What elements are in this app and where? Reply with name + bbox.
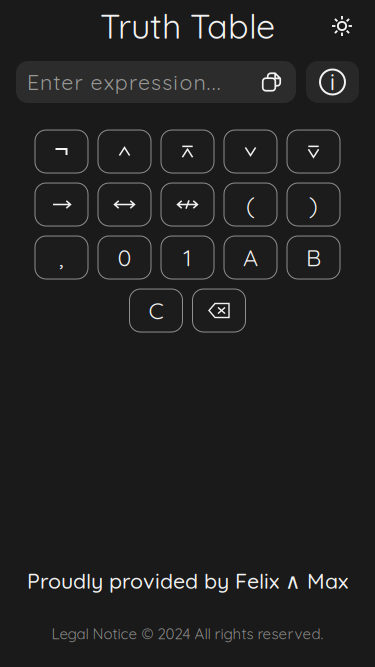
button[interactable]: A (224, 236, 277, 279)
button[interactable]: Enter expression... (16, 61, 296, 103)
staticText: A (243, 243, 258, 272)
button[interactable]: Nand (161, 130, 214, 173)
button[interactable]: ) (287, 183, 340, 226)
button[interactable]: And (98, 130, 151, 173)
button[interactable]: ( (224, 183, 277, 226)
button[interactable]: Toggle appearance (321, 5, 363, 47)
button[interactable]: Equivalent (98, 183, 151, 226)
button[interactable]: Delete (192, 289, 245, 332)
staticText: C (148, 296, 163, 325)
button[interactable]: Implies (35, 183, 88, 226)
staticText: 0 (117, 243, 131, 272)
button[interactable]: Or (224, 130, 277, 173)
staticText: Enter expression... (27, 69, 221, 95)
button[interactable]: 1 (161, 236, 214, 279)
button[interactable]: B (287, 236, 340, 279)
button[interactable]: Exclusive or (161, 183, 214, 226)
staticText: Legal Notice © 2024 All rights reserved. (51, 624, 323, 643)
button[interactable]: Copy expression (262, 72, 281, 91)
staticText: 1 (183, 243, 192, 272)
button[interactable]: Nor (287, 130, 340, 173)
staticText: Proudly provided by Felix ∧ Max (27, 567, 348, 594)
button[interactable]: C (129, 289, 182, 332)
staticText: , (59, 243, 64, 272)
staticText: ) (309, 190, 318, 219)
staticText: ( (246, 190, 255, 219)
button[interactable]: 0 (98, 236, 151, 279)
staticText: Truth Table (100, 5, 275, 47)
button[interactable]: Info (306, 61, 359, 103)
staticText: i (330, 68, 335, 96)
button[interactable]: , (35, 236, 88, 279)
staticText: B (306, 243, 321, 272)
button[interactable]: Not (35, 130, 88, 173)
